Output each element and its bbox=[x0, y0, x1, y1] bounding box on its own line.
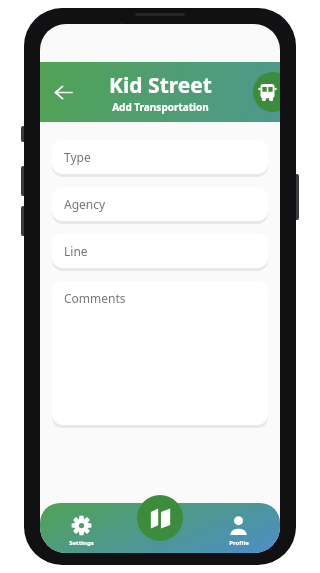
button[interactable]: Line bbox=[52, 234, 268, 268]
staticText: Line bbox=[64, 243, 88, 259]
staticText: Type bbox=[64, 149, 91, 165]
button[interactable]: Back bbox=[45, 74, 81, 110]
staticText: Add Transportation bbox=[112, 100, 209, 114]
staticText: Kid Street bbox=[109, 71, 212, 100]
staticText: Agency bbox=[64, 196, 106, 212]
staticText: Settings bbox=[69, 539, 94, 547]
button[interactable]: Comments bbox=[52, 281, 268, 425]
button[interactable]: Settings bbox=[40, 503, 123, 553]
button[interactable]: Map bbox=[137, 495, 183, 541]
button[interactable]: Type bbox=[52, 140, 268, 174]
button[interactable]: Profile bbox=[197, 503, 280, 553]
staticText: Comments bbox=[64, 290, 126, 306]
button[interactable]: Agency bbox=[52, 187, 268, 221]
button[interactable]: Transportation type bbox=[253, 72, 280, 112]
staticText: Profile bbox=[229, 539, 249, 547]
